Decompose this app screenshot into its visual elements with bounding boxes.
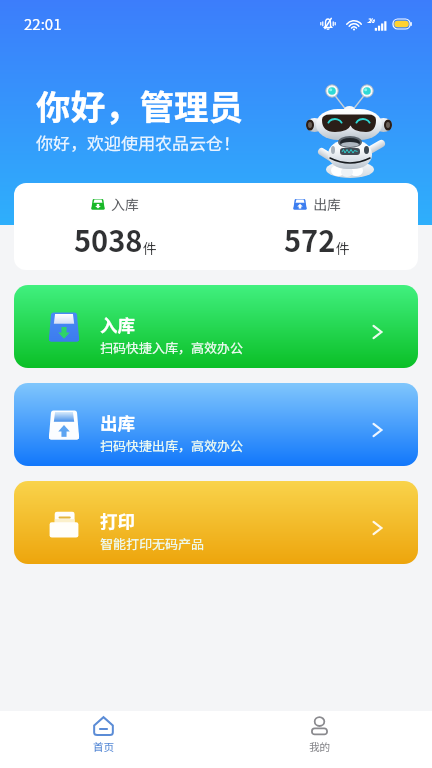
button[interactable]: 入库 (14, 285, 418, 368)
staticText: 打印 (100, 508, 135, 533)
staticText: 你好，欢迎使用农品云仓！ (36, 130, 240, 155)
staticText: 首页 (93, 739, 114, 754)
staticText: 572 (284, 218, 336, 260)
staticText: 出库 (100, 410, 135, 435)
button[interactable]: 出库 (216, 183, 418, 270)
staticText: 你好，管理员 (36, 80, 243, 130)
staticText: 入库 (100, 312, 135, 337)
staticText: 扫码快捷入库，高效办公 (100, 338, 244, 357)
button[interactable]: 首页 (0, 706, 211, 763)
button[interactable]: 打印 (14, 481, 418, 564)
staticText: 扫码快捷出库，高效办公 (100, 436, 244, 455)
staticText: 我的 (309, 739, 330, 754)
staticText: 出库 (313, 194, 341, 214)
staticText: 件 (336, 238, 350, 258)
staticText: 5038 (74, 218, 143, 260)
staticText: 件 (143, 238, 157, 258)
button[interactable]: 入库 (14, 183, 216, 270)
staticText: 智能打印无码产品 (100, 534, 205, 553)
staticText: 22:01 (24, 13, 62, 35)
button[interactable]: 出库 (14, 383, 418, 466)
button[interactable]: 我的 (211, 706, 427, 763)
staticText: 入库 (111, 194, 139, 214)
